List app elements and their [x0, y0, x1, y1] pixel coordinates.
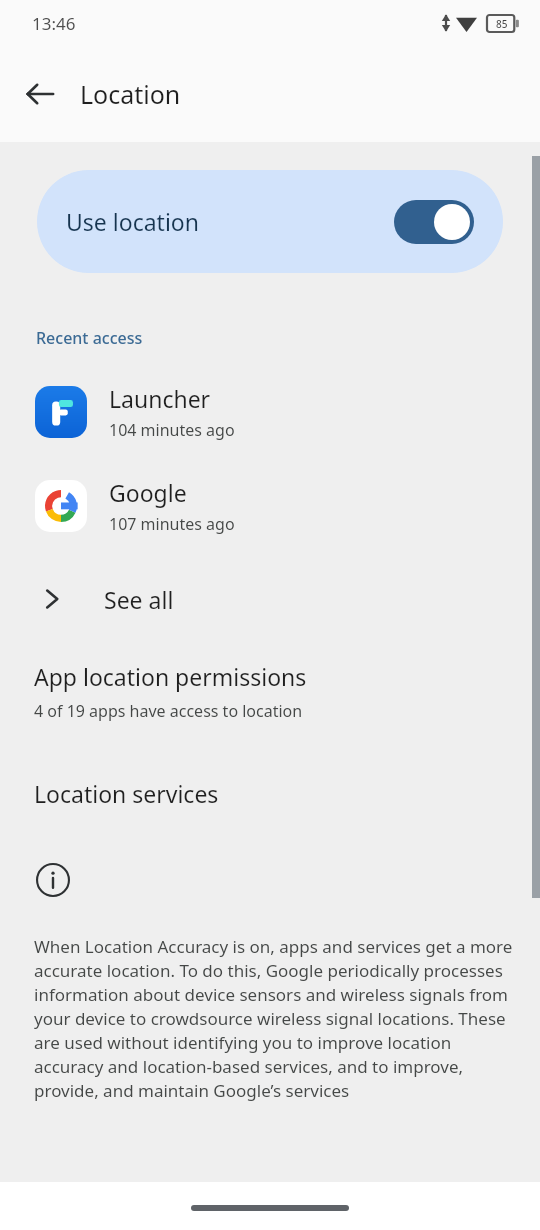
staticText: 104 minutes ago	[109, 419, 235, 441]
staticText: Use location	[66, 206, 199, 237]
staticText: 4 of 19 apps have access to location	[34, 700, 303, 722]
button[interactable]: Launcher	[0, 377, 540, 447]
button[interactable]: Back	[18, 72, 62, 116]
button[interactable]: Use location	[37, 170, 503, 273]
staticText: 107 minutes ago	[109, 513, 235, 535]
staticText: App location permissions	[34, 661, 307, 692]
button[interactable]: Use location toggle	[394, 200, 474, 244]
staticText: When Location Accuracy is on, apps and s…	[34, 935, 518, 1102]
staticText: Google	[109, 477, 187, 508]
staticText: 85	[496, 17, 508, 31]
button[interactable]: App location permissions	[0, 657, 540, 728]
staticText: Location	[80, 77, 181, 111]
staticText: Recent access	[36, 327, 143, 349]
button[interactable]: Google	[0, 471, 540, 541]
staticText: Launcher	[109, 383, 211, 414]
staticText: 13:46	[32, 12, 76, 35]
button[interactable]: See all	[0, 567, 540, 631]
staticText: See all	[104, 584, 174, 615]
button[interactable]: Location services	[0, 776, 540, 811]
